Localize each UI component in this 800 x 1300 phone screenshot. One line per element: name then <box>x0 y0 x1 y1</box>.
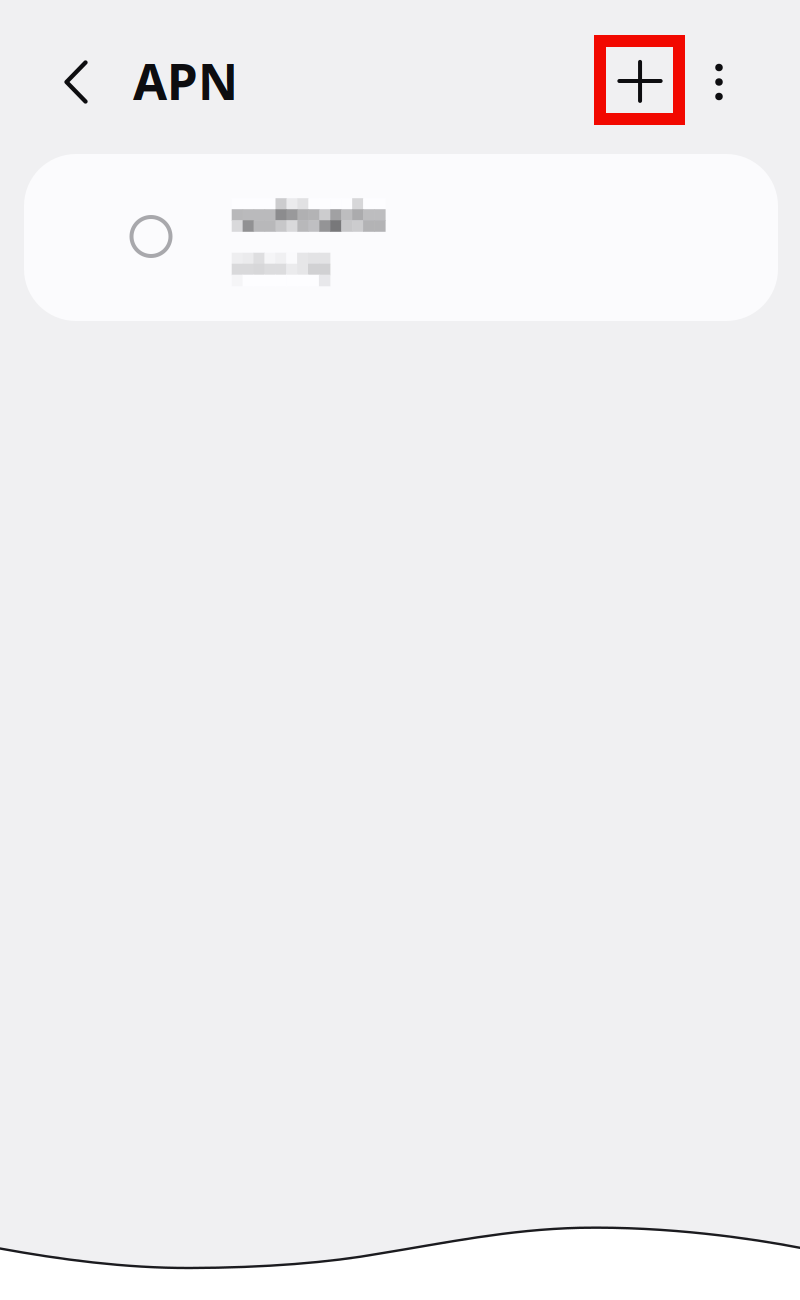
staticText: APN <box>133 48 238 113</box>
button[interactable]: More options <box>689 40 749 124</box>
button[interactable] <box>24 154 778 321</box>
button[interactable]: Add APN <box>599 39 681 123</box>
button[interactable]: Back <box>39 40 113 124</box>
